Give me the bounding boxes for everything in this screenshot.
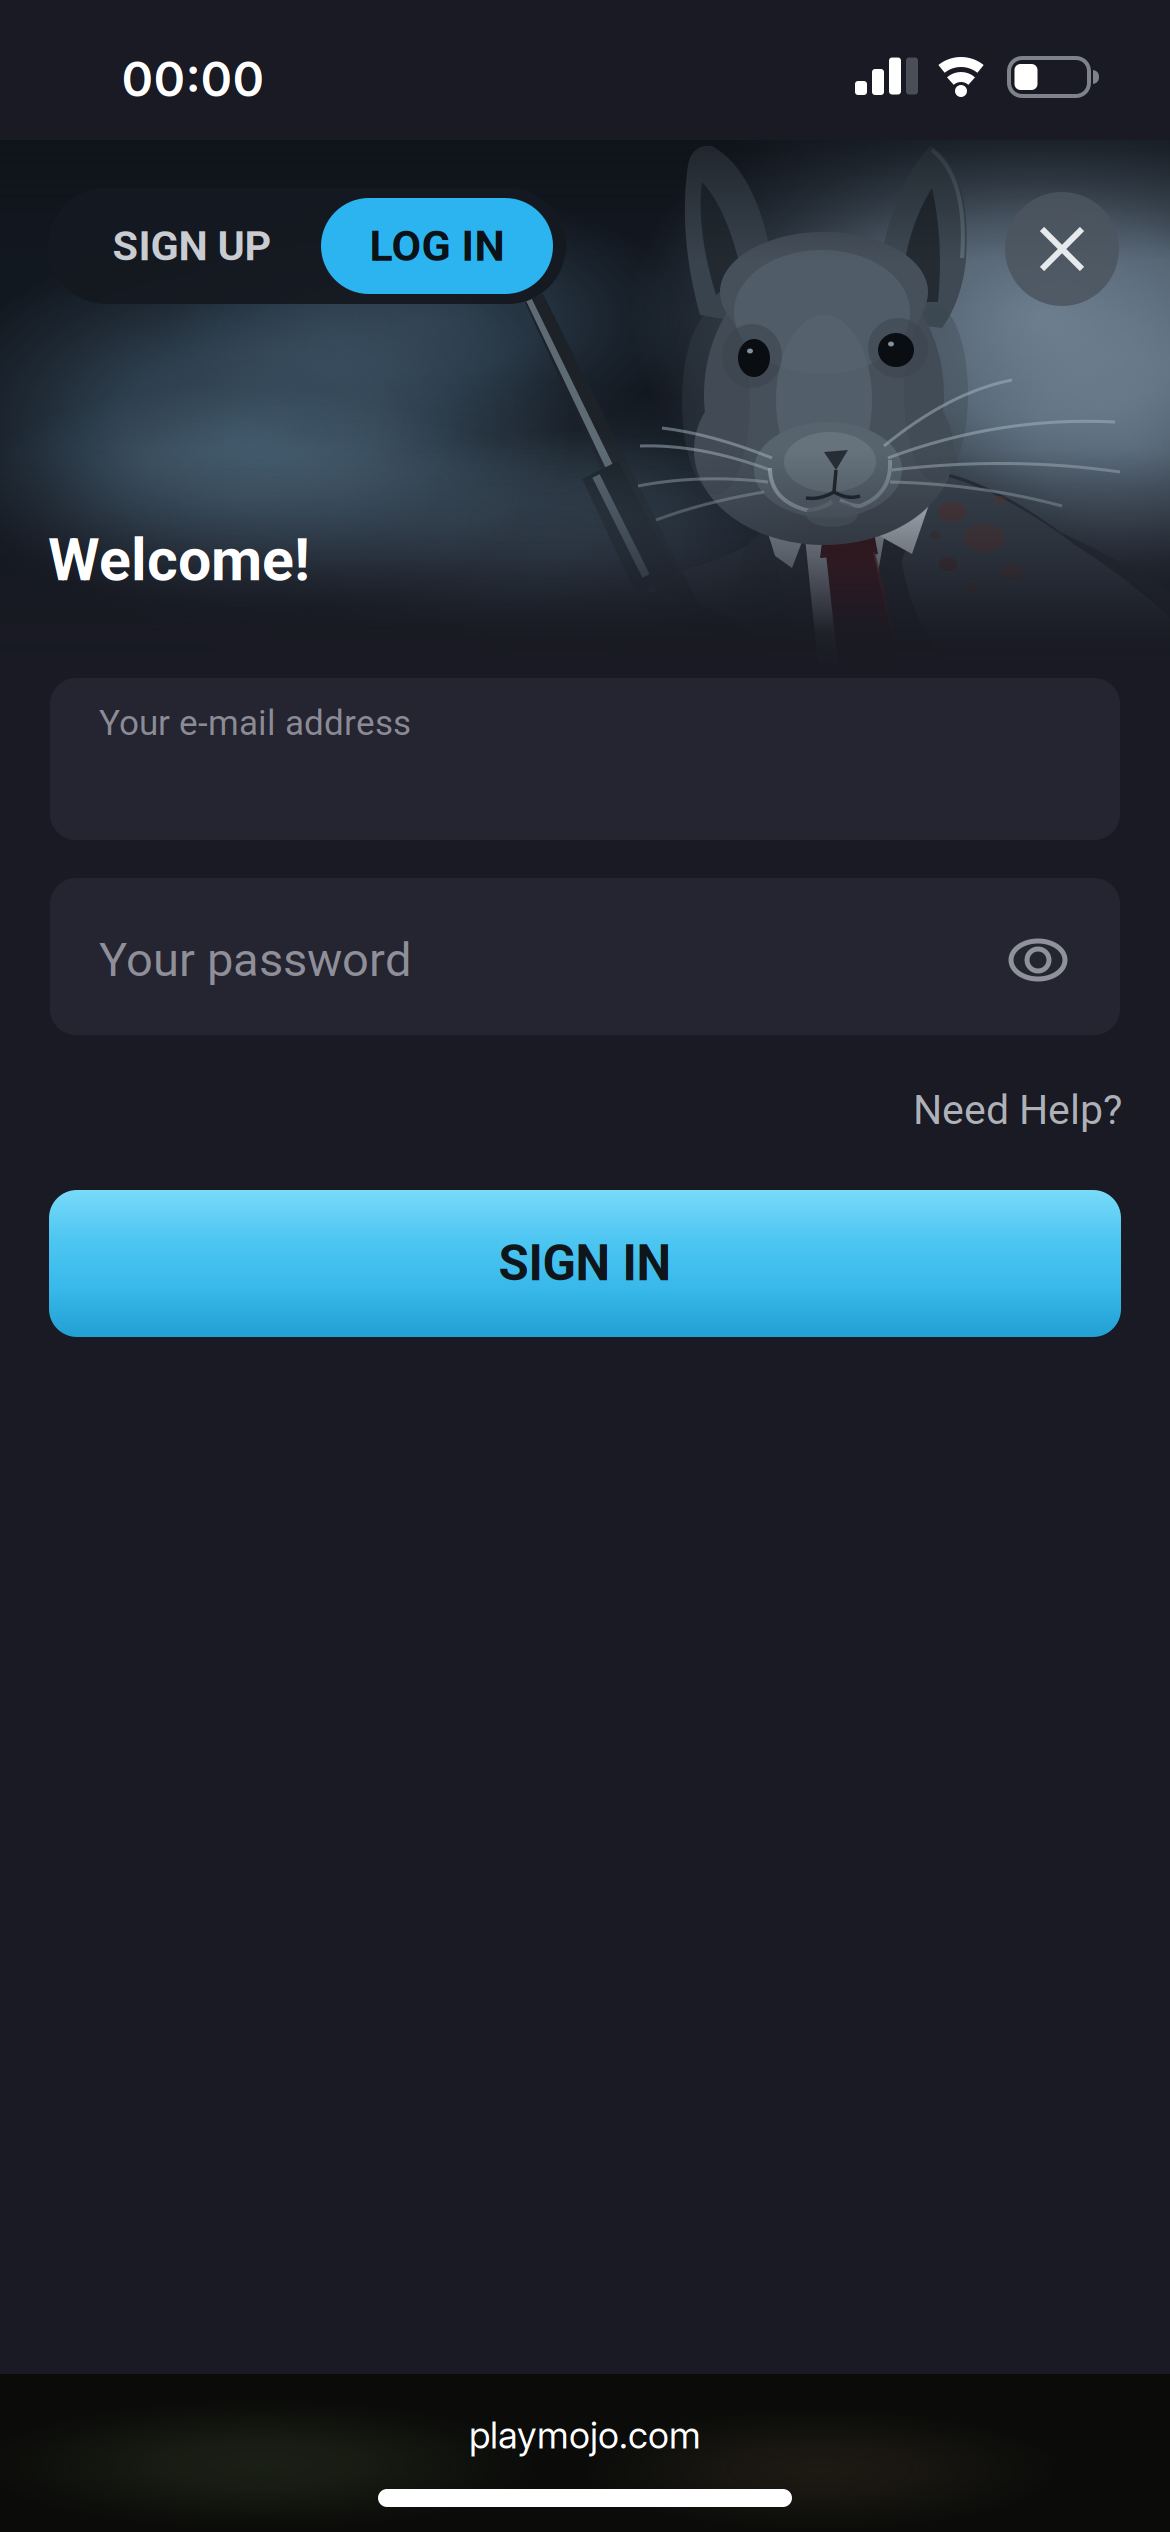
button[interactable]: Your e-mail address	[50, 678, 1120, 840]
staticText: SIGN IN	[498, 1235, 671, 1292]
staticText: Your e-mail address	[99, 702, 411, 744]
button[interactable]: SIGN IN	[49, 1190, 1121, 1337]
staticText: LOG IN	[369, 221, 504, 271]
button[interactable]: SIGN UP	[48, 188, 336, 304]
staticText: 00:00	[121, 51, 264, 107]
button[interactable]: Show password	[1009, 938, 1067, 982]
button[interactable]: LOG IN	[321, 198, 553, 294]
button[interactable]: Your password	[50, 878, 1120, 1035]
staticText: Welcome!	[48, 525, 310, 595]
button[interactable]: Close	[1005, 192, 1119, 306]
button[interactable]: Need Help?	[913, 1086, 1122, 1134]
staticText: SIGN UP	[112, 222, 271, 270]
staticText: Need Help?	[913, 1086, 1122, 1134]
staticText: Your password	[99, 932, 412, 988]
staticText: playmojo.com	[469, 2413, 701, 2457]
